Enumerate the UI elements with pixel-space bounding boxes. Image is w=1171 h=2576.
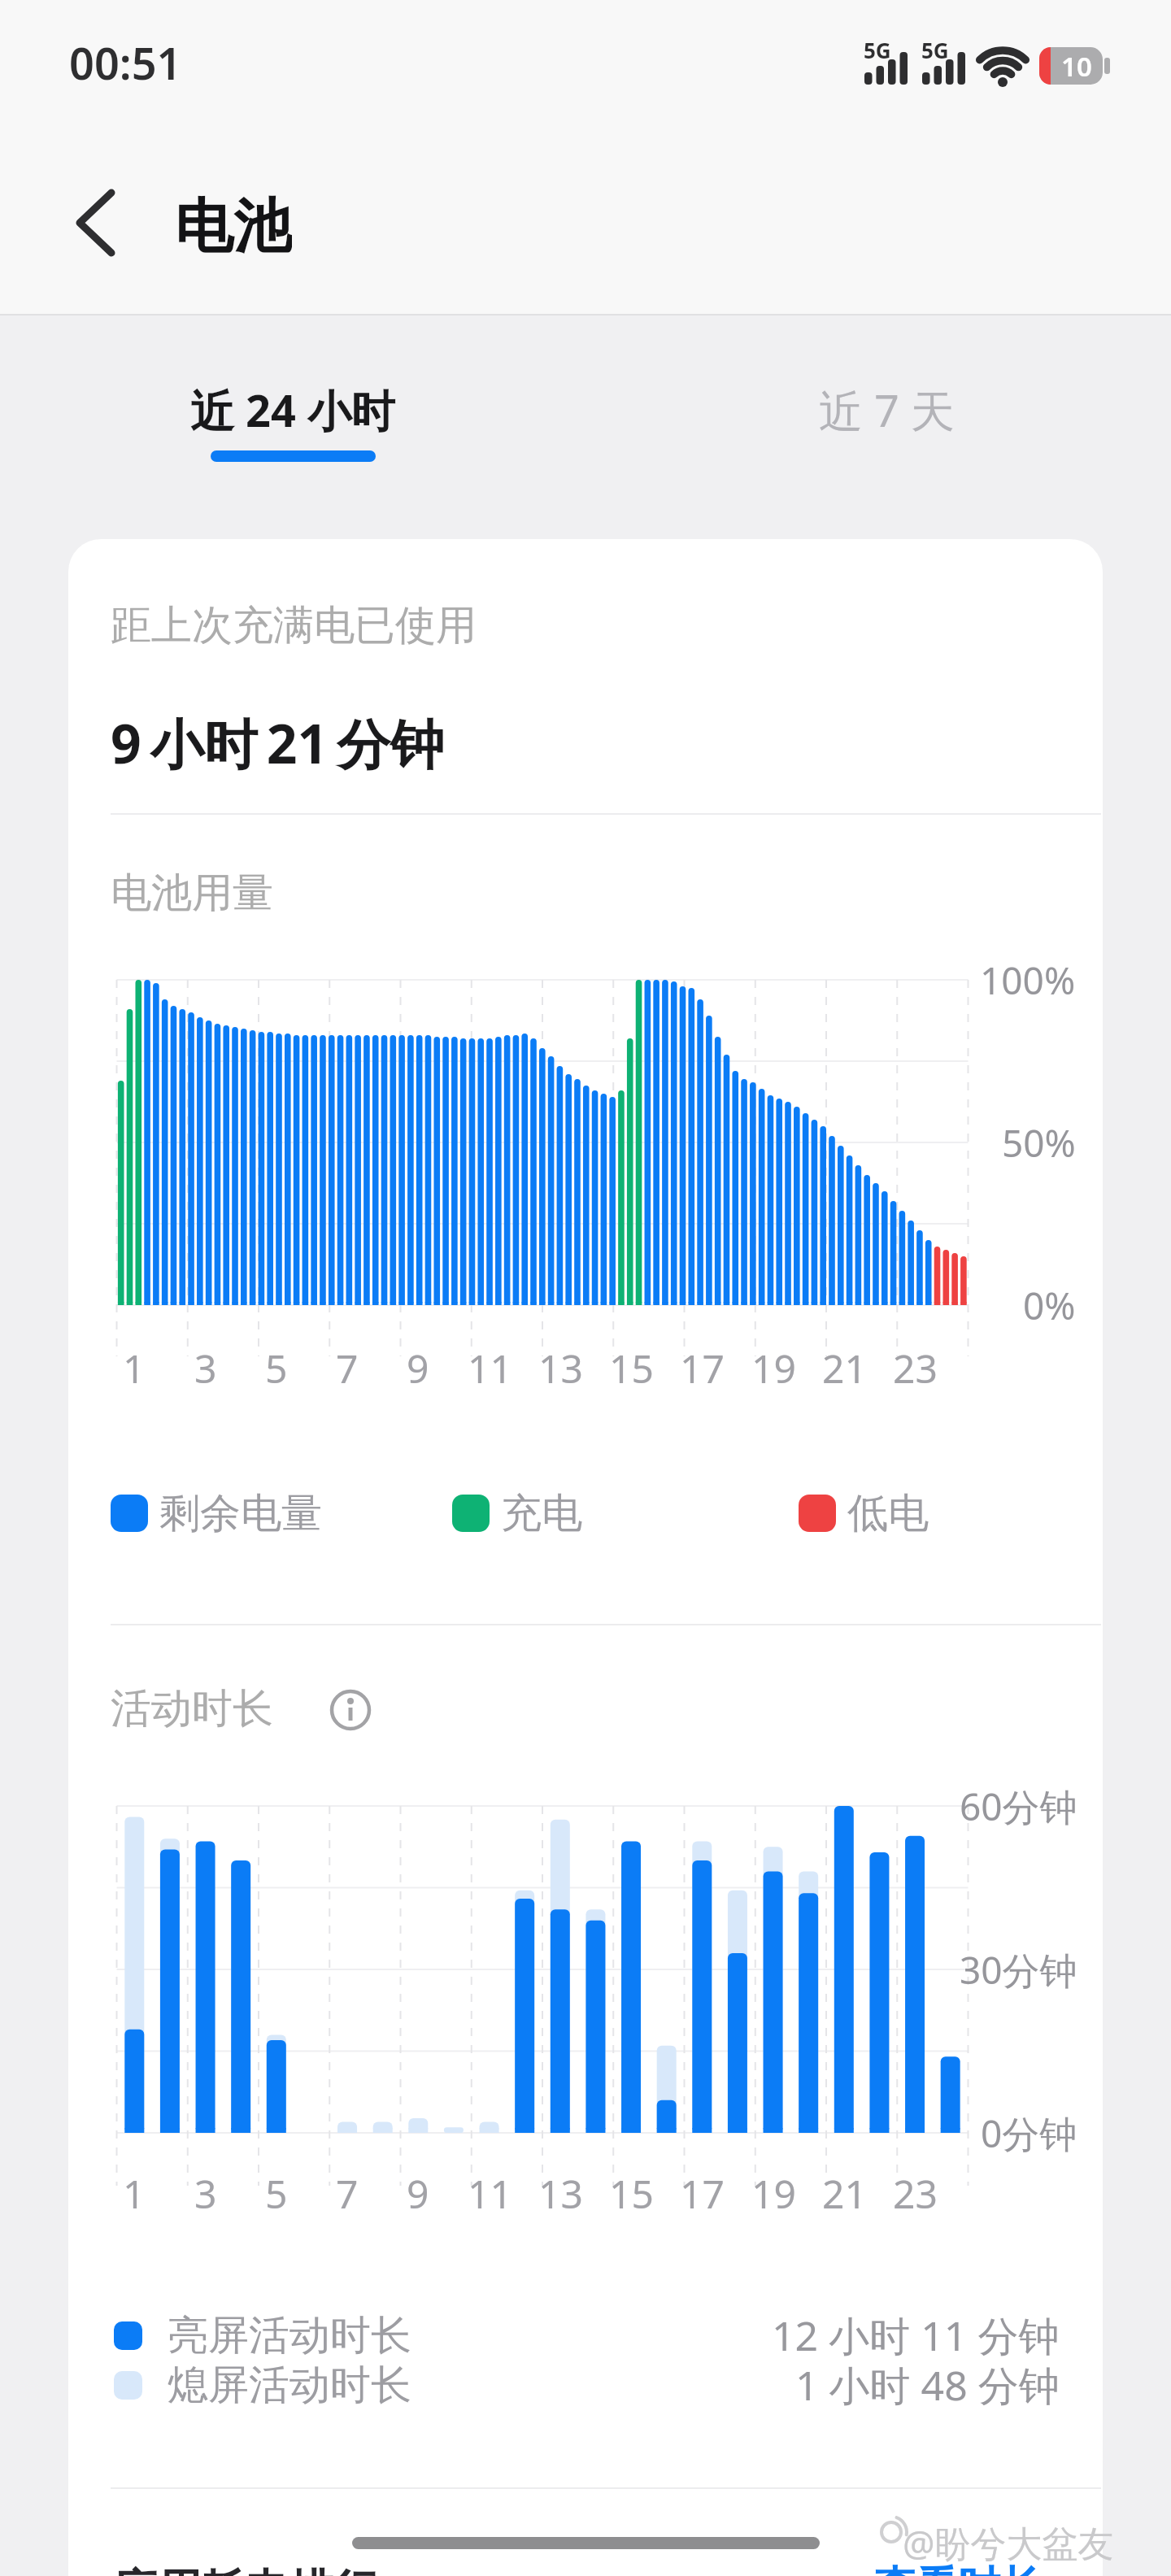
staticText: 5 xyxy=(265,2167,288,2220)
staticText: 查看时长 xyxy=(873,2561,1043,2576)
staticText: 13 xyxy=(538,2167,583,2220)
staticText: 19 xyxy=(751,2167,796,2220)
staticText: 电池用量 xyxy=(111,868,273,919)
staticText: 9 xyxy=(407,1342,429,1395)
staticText: 9 xyxy=(407,2167,429,2220)
staticText: 5G xyxy=(864,36,891,64)
staticText: 3 xyxy=(194,1342,217,1395)
staticText: 1 xyxy=(123,2167,146,2220)
staticText: 60分钟 xyxy=(960,1781,1077,1832)
button[interactable]: 查看时长 xyxy=(873,2555,1085,2576)
staticText: 电池 xyxy=(175,190,292,255)
staticText: 17 xyxy=(680,2167,725,2220)
staticText: 1 xyxy=(123,1342,146,1395)
staticText: 近 24 小时 xyxy=(190,380,395,440)
staticText: 19 xyxy=(751,1342,796,1395)
staticText: 熄屏活动时长 xyxy=(168,2360,411,2411)
staticText: 5G xyxy=(921,36,949,64)
staticText: 11 xyxy=(468,1342,512,1395)
staticText: 17 xyxy=(680,1342,725,1395)
staticText: 1 小时 48 分钟 xyxy=(795,2357,1060,2413)
staticText: 亮屏活动时长 xyxy=(168,2310,411,2361)
staticText: 剩余电量 xyxy=(159,1488,322,1539)
staticText: 21 xyxy=(822,1342,867,1395)
staticText: 100% xyxy=(980,955,1076,1006)
staticText: 活动时长 xyxy=(111,1683,273,1734)
staticText: 00:51 xyxy=(69,33,182,93)
staticText: @盼兮大盆友 xyxy=(903,2518,1114,2567)
staticText: 9 小时 21 分钟 xyxy=(111,706,445,771)
staticText: 11 xyxy=(468,2167,512,2220)
button[interactable]: 近 24 小时 xyxy=(130,377,455,442)
staticText: 15 xyxy=(609,1342,654,1395)
staticText: 近 7 天 xyxy=(819,380,955,440)
staticText: 应用耗电排行 xyxy=(114,2563,377,2576)
staticText: 3 xyxy=(194,2167,217,2220)
button[interactable]: 活动时长 xyxy=(111,1676,680,1741)
staticText: 15 xyxy=(609,2167,654,2220)
staticText: 0分钟 xyxy=(981,2108,1077,2159)
staticText: 7 xyxy=(336,1342,359,1395)
staticText: 23 xyxy=(893,1342,938,1395)
staticText: 23 xyxy=(893,2167,938,2220)
button[interactable]: 应用耗电排行 xyxy=(114,2558,683,2576)
staticText: 21 xyxy=(822,2167,867,2220)
staticText: 5 xyxy=(265,1342,288,1395)
staticText: 充电 xyxy=(501,1488,582,1539)
staticText: 50% xyxy=(1002,1117,1076,1168)
staticText: 30分钟 xyxy=(960,1944,1077,1995)
staticText: 低电 xyxy=(847,1488,929,1539)
button[interactable] xyxy=(49,174,146,272)
staticText: 距上次充满电已使用 xyxy=(111,600,477,651)
staticText: 12 小时 11 分钟 xyxy=(772,2308,1060,2363)
staticText: 13 xyxy=(538,1342,583,1395)
staticText: 7 xyxy=(336,2167,359,2220)
button[interactable]: 近 7 天 xyxy=(724,377,1049,442)
staticText: 0% xyxy=(1023,1280,1076,1331)
staticText: 10 xyxy=(1061,48,1092,85)
